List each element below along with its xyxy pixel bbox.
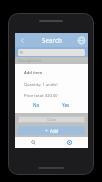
- staticText: Price total: $20.00: [24, 93, 58, 98]
- staticText: Quantity: 1 unit(s): [24, 82, 58, 87]
- button[interactable]: Shopping list: [51, 137, 88, 148]
- button[interactable]: Clear: [18, 116, 85, 123]
- staticText: Add item: [24, 70, 43, 76]
- staticText: Brought list: [18, 58, 41, 64]
- staticText: Yes: [62, 102, 70, 108]
- staticText: No: [33, 102, 40, 108]
- button[interactable]: Search: [15, 137, 51, 148]
- staticText: Search: [42, 36, 62, 44]
- button[interactable]: Add: [18, 126, 85, 135]
- staticText: Clear: [47, 117, 57, 122]
- button[interactable]: [18, 49, 85, 56]
- button[interactable]: Back: [17, 35, 27, 45]
- staticText: Add: [50, 128, 59, 134]
- button[interactable]: Language: [76, 35, 86, 45]
- button[interactable]: Yes: [57, 101, 75, 109]
- button[interactable]: No: [28, 101, 45, 109]
